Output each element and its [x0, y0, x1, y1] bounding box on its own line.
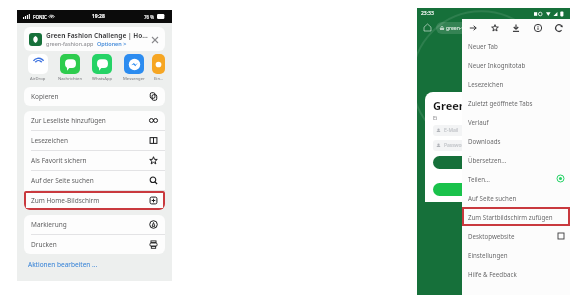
staticText: Ein… [154, 76, 164, 82]
staticText: WhatsApp [92, 76, 113, 82]
staticText: Zum Home-Bildschirm [31, 196, 149, 205]
button[interactable]: Zum Startbildschirm zufügen [462, 207, 570, 226]
staticText: Optionen > [97, 40, 127, 47]
staticText: 76 % [144, 14, 155, 20]
staticText: Übersetzen... [468, 156, 564, 164]
staticText: Ei [433, 114, 438, 121]
staticText: Drucken [31, 240, 149, 249]
staticText: Zur Leseliste hinzufügen [31, 116, 149, 125]
button[interactable]: Auf der Seite suchen [24, 171, 165, 190]
button[interactable]: Neuer Inkognitotab [462, 55, 570, 74]
button[interactable]: Kopieren [24, 87, 165, 106]
button[interactable]: Lesezeichen hinzufügen [488, 21, 502, 35]
button[interactable]: Teilen... [462, 169, 570, 188]
button[interactable]: Hilfe & Feedback [462, 264, 570, 283]
button[interactable]: Messenger [120, 54, 148, 82]
staticText: 19:28 [92, 13, 105, 20]
button[interactable]: Als Favorit sichern [24, 151, 165, 170]
button[interactable]: Markierung [24, 215, 165, 234]
staticText: Einstellungen [468, 251, 564, 259]
button[interactable] [433, 183, 558, 196]
button[interactable]: Auf Seite suchen [462, 188, 570, 207]
button[interactable]: Herunterladen [509, 21, 523, 35]
button[interactable]: Verlauf [462, 112, 570, 131]
staticText: Auf der Seite suchen [31, 176, 149, 185]
staticText: Als Favorit sichern [31, 156, 149, 165]
button[interactable]: Passwort [433, 140, 558, 151]
staticText: 23:33 [421, 10, 434, 17]
staticText: Markierung [31, 220, 149, 229]
button[interactable]: Einstellungen [462, 245, 570, 264]
button[interactable]: Zuletzt geöffnete Tabs [462, 93, 570, 112]
button[interactable]: Zum Home-Bildschirm [24, 191, 165, 210]
staticText: Teilen... [468, 175, 557, 183]
button[interactable]: Schließen [149, 34, 160, 45]
staticText: Lesezeichen [468, 80, 564, 88]
staticText: green-fashion.app [446, 25, 490, 32]
staticText: Desktopwebsite [468, 232, 558, 240]
button[interactable]: E-Mail [433, 125, 558, 136]
staticText: AirDrop [30, 76, 46, 82]
button[interactable]: Green Fashion Challenge | Home [24, 27, 165, 51]
staticText: Green [433, 98, 466, 113]
staticText: Zuletzt geöffnete Tabs [468, 99, 564, 107]
button[interactable]: Desktopwebsite [462, 226, 570, 245]
staticText: Passwort [444, 142, 466, 149]
button[interactable]: Lesezeichen [24, 131, 165, 150]
staticText: Neuer Inkognitotab [468, 61, 564, 69]
button[interactable]: Drucken [24, 235, 165, 254]
button[interactable]: Vorwärts [466, 21, 480, 35]
button[interactable]: Aktionen bearbeiten ... [24, 260, 165, 269]
staticText: Downloads [468, 137, 564, 145]
staticText: E-Mail [444, 127, 459, 134]
staticText: Verlauf [468, 118, 564, 126]
button[interactable]: Nachrichten [56, 54, 84, 82]
staticText: Nachrichten [58, 76, 82, 82]
button[interactable]: Seiteninfo [531, 21, 545, 35]
button[interactable]: Zur Leseliste hinzufügen [24, 111, 165, 130]
button[interactable]: green-fashion.app [436, 22, 565, 34]
staticText: Messenger [123, 76, 145, 82]
staticText: Aktionen bearbeiten ... [28, 260, 98, 269]
staticText: green-fashion.app [46, 40, 94, 47]
button[interactable]: Startseite [422, 22, 433, 33]
button[interactable]: Ein… [152, 54, 165, 82]
staticText: Hilfe & Feedback [468, 270, 564, 278]
staticText: FONIC [33, 14, 47, 20]
button[interactable]: Lesezeichen [462, 74, 570, 93]
button[interactable]: AirDrop [24, 54, 52, 82]
button[interactable]: WhatsApp [88, 54, 116, 82]
button[interactable]: Downloads [462, 131, 570, 150]
staticText: Auf Seite suchen [468, 194, 564, 202]
button[interactable]: Übersetzen... [462, 150, 570, 169]
button[interactable]: Neu laden [552, 21, 566, 35]
staticText: Kopieren [31, 92, 149, 101]
staticText: Lesezeichen [31, 136, 149, 145]
button[interactable]: Neuer Tab [462, 36, 570, 55]
staticText: Neuer Tab [468, 42, 564, 50]
staticText: Green Fashion Challenge | Home [46, 31, 149, 40]
staticText: Zum Startbildschirm zufügen [468, 213, 564, 221]
button[interactable] [433, 156, 558, 169]
